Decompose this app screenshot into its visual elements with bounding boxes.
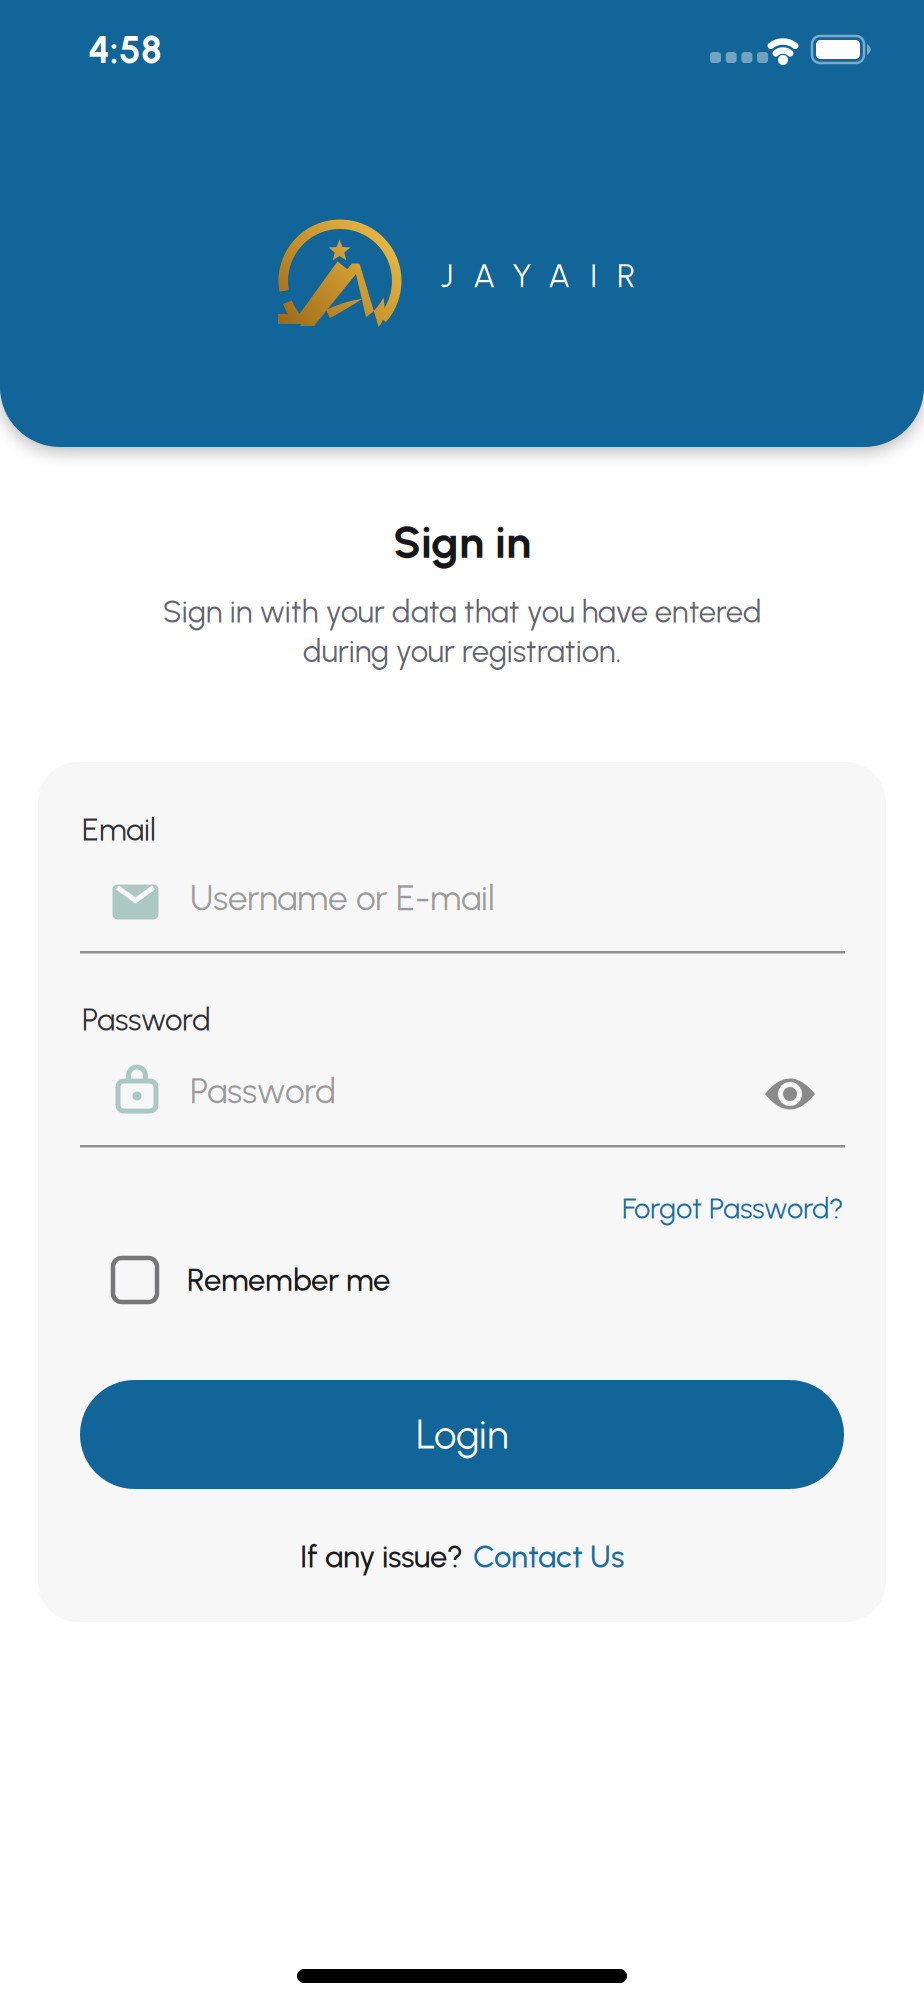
staticText: Login xyxy=(416,1410,508,1458)
button[interactable]: Show password xyxy=(765,1077,815,1111)
staticText: Sign in with your data that you have ent… xyxy=(162,593,761,670)
button[interactable]: Login xyxy=(80,1380,844,1489)
button[interactable]: Remember me xyxy=(113,1258,390,1302)
staticText: Contact Us xyxy=(473,1538,624,1575)
staticText: 4:58 xyxy=(88,27,162,73)
staticText: Forgot Password? xyxy=(622,1191,844,1226)
staticText: If any issue? xyxy=(300,1538,463,1575)
button[interactable]: Forgot Password? xyxy=(622,1191,844,1226)
staticText: Sign in xyxy=(393,515,531,569)
button[interactable]: Contact Us xyxy=(473,1538,624,1575)
staticText: Email xyxy=(82,811,156,848)
staticText: Password xyxy=(190,1070,336,1112)
staticText: Remember me xyxy=(187,1261,390,1299)
staticText: Password xyxy=(82,1001,211,1038)
staticText: JAYAIR xyxy=(440,256,635,296)
staticText: Username or E-mail xyxy=(190,877,495,919)
